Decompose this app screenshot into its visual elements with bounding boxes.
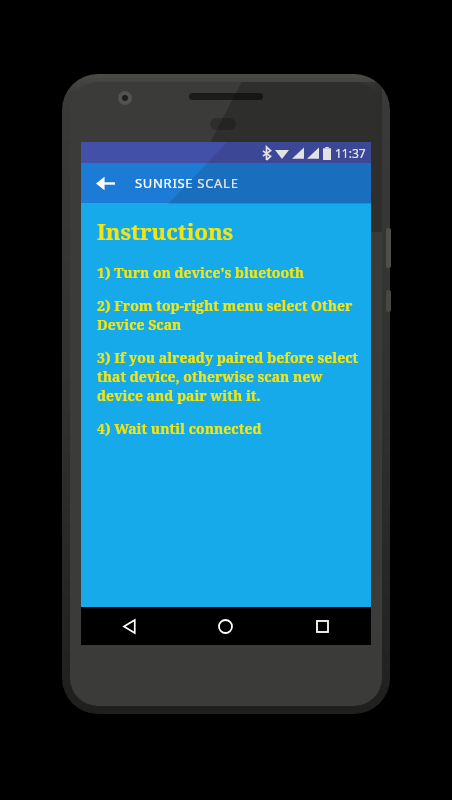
button[interactable]: Navigate up: [89, 167, 121, 199]
staticText: SUNRISE SCALE: [135, 174, 239, 192]
button[interactable]: Recents: [274, 607, 371, 645]
staticText: Instructions: [97, 216, 234, 246]
button[interactable]: Home: [177, 607, 274, 645]
staticText: 2) From top-right menu select Other Devi…: [97, 296, 361, 334]
button[interactable]: Back: [81, 607, 177, 645]
staticText: 4) Wait until connected: [97, 419, 262, 438]
staticText: 3) If you already paired before select t…: [97, 348, 361, 405]
staticText: 1) Turn on device's bluetooth: [97, 263, 305, 282]
staticText: 11:37: [335, 145, 366, 161]
